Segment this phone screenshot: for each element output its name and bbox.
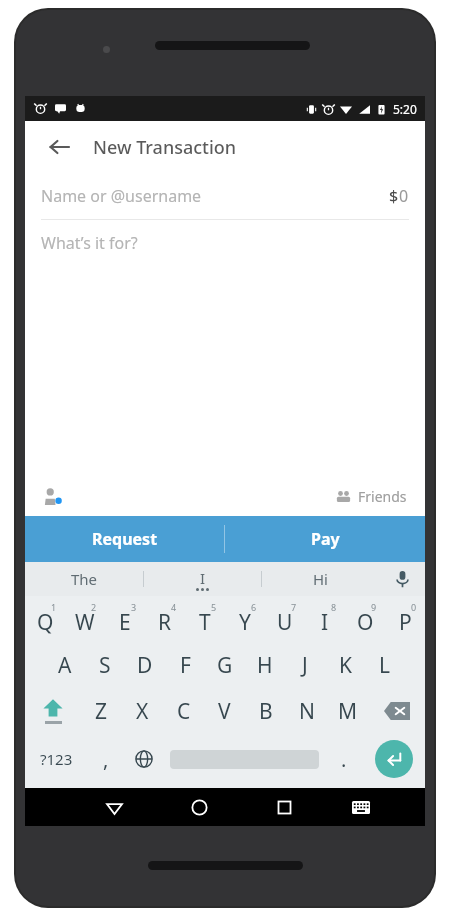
button[interactable]: Shift [25, 688, 81, 734]
staticText: $ [389, 185, 399, 207]
button[interactable]: Hide keyboard [327, 788, 395, 826]
button[interactable]: I [305, 596, 345, 642]
staticText: 0 [399, 185, 409, 207]
button[interactable]: Voice input [379, 562, 425, 596]
button[interactable]: What’s it for? [25, 220, 425, 266]
staticText: X [136, 697, 149, 726]
staticText: E [119, 608, 131, 637]
staticText: Z [95, 697, 108, 726]
staticText: J [302, 651, 308, 680]
button[interactable]: Privacy [39, 483, 65, 509]
staticText: 2 [91, 601, 97, 613]
button[interactable]: W [65, 596, 105, 642]
button[interactable]: Name or @username [25, 173, 425, 219]
staticText: 8 [331, 601, 337, 613]
button[interactable]: Friends [332, 483, 411, 510]
staticText: 7 [291, 601, 297, 613]
button[interactable]: T [185, 596, 225, 642]
staticText: 1 [51, 601, 57, 613]
staticText: H [257, 651, 273, 680]
button[interactable]: The [25, 562, 143, 596]
staticText: Friends [358, 487, 407, 506]
button[interactable]: I [144, 562, 261, 596]
staticText: F [180, 651, 191, 680]
staticText: 6 [251, 601, 257, 613]
button[interactable]: U [265, 596, 305, 642]
staticText: C [177, 697, 191, 726]
staticText: What’s it for? [41, 232, 138, 254]
staticText: O [357, 608, 374, 637]
button[interactable]: N [286, 688, 327, 734]
staticText: Pay [311, 528, 340, 550]
staticText: I [200, 568, 206, 588]
staticText: A [58, 651, 72, 680]
staticText: V [218, 697, 231, 726]
button[interactable]: R [145, 596, 185, 642]
button[interactable]: M [327, 688, 368, 734]
button[interactable]: , [87, 734, 125, 784]
staticText: The [71, 569, 98, 589]
button[interactable]: . [325, 734, 363, 784]
button[interactable]: ?123 [25, 734, 87, 784]
button[interactable]: Q [25, 596, 65, 642]
button[interactable]: B [245, 688, 286, 734]
staticText: Y [239, 608, 251, 637]
button[interactable]: Change language [125, 734, 163, 784]
staticText: R [158, 608, 172, 637]
button[interactable]: D [125, 642, 165, 688]
button[interactable]: X [122, 688, 163, 734]
staticText: G [217, 651, 233, 680]
button[interactable]: Enter [363, 734, 425, 784]
button[interactable]: F [165, 642, 205, 688]
staticText: Q [37, 608, 54, 637]
staticText: 9 [371, 601, 377, 613]
button[interactable]: Home [157, 788, 242, 826]
button[interactable]: K [325, 642, 365, 688]
staticText: , [103, 746, 109, 773]
button[interactable]: O [345, 596, 385, 642]
button[interactable]: V [204, 688, 245, 734]
button[interactable]: S [85, 642, 125, 688]
staticText: S [99, 651, 111, 680]
staticText: D [137, 651, 153, 680]
staticText: 5:20 [393, 101, 417, 117]
staticText: 3 [131, 601, 137, 613]
button[interactable]: A [45, 642, 85, 688]
button[interactable]: J [285, 642, 325, 688]
button[interactable]: L [365, 642, 405, 688]
button[interactable]: C [163, 688, 204, 734]
staticText: New Transaction [93, 135, 237, 160]
staticText: 5 [211, 601, 217, 613]
staticText: Request [92, 528, 158, 550]
button[interactable]: E [105, 596, 145, 642]
staticText: T [199, 608, 211, 637]
staticText: . [341, 746, 347, 773]
button[interactable]: Hi [262, 562, 379, 596]
staticText: L [379, 651, 391, 680]
staticText: K [339, 651, 352, 680]
button[interactable]: Z [81, 688, 122, 734]
button[interactable]: P [385, 596, 425, 642]
button[interactable]: Request [25, 516, 224, 562]
button[interactable]: Pay [225, 516, 425, 562]
button[interactable]: G [205, 642, 245, 688]
button[interactable]: Recents [242, 788, 327, 826]
button[interactable]: Back [39, 127, 79, 167]
button[interactable]: Backspace [368, 688, 425, 734]
staticText: N [299, 697, 315, 726]
staticText: P [399, 608, 412, 637]
staticText: U [277, 608, 293, 637]
staticText: I [321, 608, 329, 637]
button[interactable]: Back [72, 788, 157, 826]
button[interactable]: Space [163, 734, 325, 784]
button[interactable]: H [245, 642, 285, 688]
staticText: Hi [313, 569, 328, 589]
button[interactable]: Y [225, 596, 265, 642]
staticText: 0 [411, 601, 417, 613]
staticText: B [259, 697, 273, 726]
staticText: W [75, 608, 95, 637]
staticText: M [338, 697, 358, 726]
staticText: 4 [171, 601, 177, 613]
staticText: ?123 [40, 749, 73, 769]
staticText: Name or @username [41, 185, 389, 207]
